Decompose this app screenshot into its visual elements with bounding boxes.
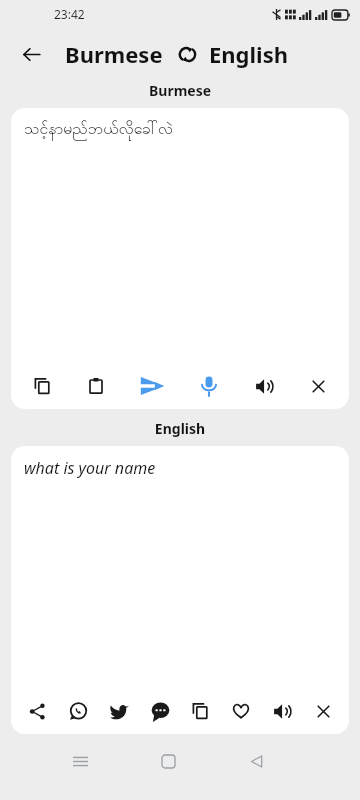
button[interactable]: English <box>209 39 289 69</box>
staticText: English <box>0 419 360 438</box>
button[interactable]: Speak <box>244 366 284 406</box>
button[interactable]: သင့်နာမည်ဘယ်လိုခေါ်လဲ <box>11 108 349 363</box>
button[interactable]: Clear <box>298 366 338 406</box>
button[interactable]: Back <box>236 743 276 779</box>
button[interactable]: Paste <box>76 366 116 406</box>
staticText: Burmese <box>65 39 163 69</box>
button[interactable]: Clear <box>306 694 340 728</box>
button[interactable]: Swap languages <box>171 38 203 70</box>
button[interactable]: Voice input <box>188 365 230 407</box>
button[interactable]: Back <box>10 33 52 75</box>
staticText: what is your name <box>24 457 156 479</box>
button[interactable]: Speak <box>265 694 299 728</box>
button[interactable]: what is your name <box>11 446 349 688</box>
button[interactable]: Home <box>148 743 188 779</box>
staticText: 23:42 <box>54 6 85 22</box>
staticText: Burmese <box>0 81 360 100</box>
button[interactable]: Share <box>20 694 54 728</box>
button[interactable]: Translate <box>130 364 174 408</box>
button[interactable]: Copy <box>22 366 62 406</box>
button[interactable]: Copy <box>183 694 217 728</box>
staticText: English <box>209 39 289 69</box>
button[interactable]: Send SMS <box>143 694 177 728</box>
button[interactable]: Add to favourites <box>224 694 258 728</box>
button[interactable]: Share on WhatsApp <box>61 694 95 728</box>
button[interactable]: Burmese <box>65 39 163 69</box>
staticText: သင့်နာမည်ဘယ်လိုခေါ်လဲ <box>24 118 174 142</box>
button[interactable]: Recent apps <box>60 743 100 779</box>
button[interactable]: Share on Twitter <box>102 694 136 728</box>
